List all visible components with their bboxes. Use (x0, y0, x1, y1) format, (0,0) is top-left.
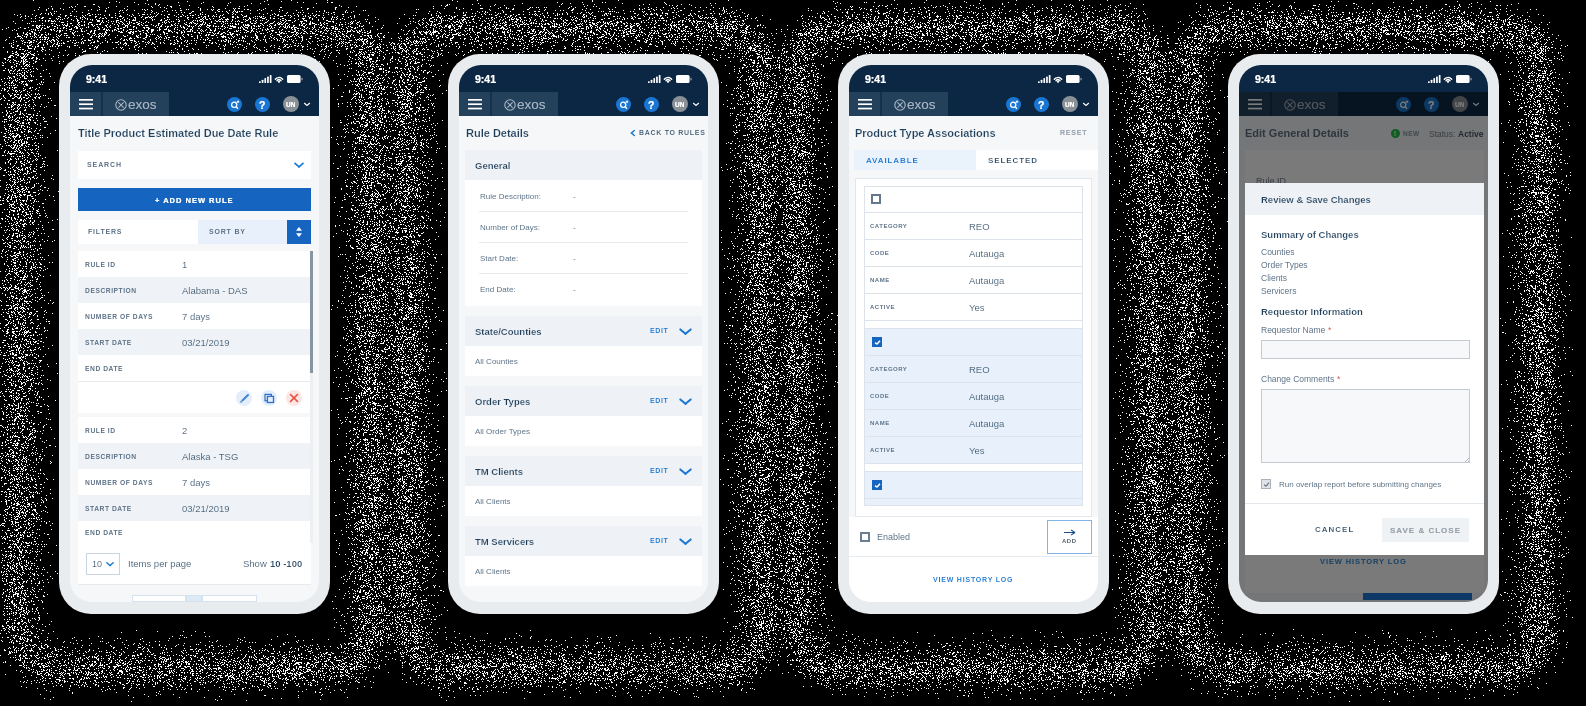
button[interactable]: CATEGORY (864, 356, 1083, 382)
button[interactable]: SORT BY (198, 220, 287, 244)
button[interactable]: Enabled (860, 532, 911, 542)
button[interactable]: SAVE & CLOSE (1382, 518, 1469, 542)
button[interactable]: Select all rows (871, 194, 881, 204)
button[interactable]: NUMBER OF DAYS (78, 303, 311, 329)
button[interactable]: Delete (286, 390, 302, 406)
button[interactable]: Menu (459, 92, 490, 116)
button[interactable]: Account menu (1082, 100, 1090, 108)
button[interactable]: VIEW HISTORY LOG (933, 576, 1014, 584)
button[interactable]: Account (1062, 96, 1078, 112)
staticText: CATEGORY (870, 366, 969, 373)
button[interactable]: Search (616, 97, 631, 112)
staticText: Alaska - TSG (182, 451, 239, 462)
button[interactable]: TM Servicers (465, 526, 702, 556)
staticText: + ADD NEW RULE (155, 196, 234, 204)
staticText: Autauga (969, 248, 1005, 259)
button[interactable]: CANCEL (1307, 517, 1363, 542)
button[interactable]: ADD (1047, 520, 1092, 554)
button[interactable]: Menu (849, 92, 880, 116)
button[interactable]: RESET (1060, 129, 1088, 137)
button[interactable]: CATEGORY (864, 213, 1083, 239)
button[interactable]: CODE (864, 383, 1083, 409)
button[interactable]: + ADD NEW RULE (78, 188, 311, 211)
button[interactable]: Search (227, 97, 242, 112)
button[interactable]: Sort direction (287, 220, 311, 244)
button[interactable]: END DATE (78, 355, 311, 381)
staticText: Enabled (877, 532, 911, 542)
staticText: ? (1038, 99, 1045, 111)
button[interactable]: Menu (70, 92, 101, 116)
staticText: - (573, 192, 576, 201)
button[interactable]: Account (1452, 96, 1468, 112)
button[interactable]: Copy (261, 390, 277, 406)
staticText: DESCRIPTION (85, 287, 182, 294)
staticText: Items per page (128, 558, 192, 569)
button[interactable]: Account (672, 96, 688, 112)
button[interactable]: Selected (872, 480, 882, 490)
staticText: exos (128, 97, 157, 112)
staticText: REO (969, 221, 990, 232)
staticText: CODE (870, 250, 969, 257)
staticText: ACTIVE (870, 304, 969, 311)
staticText: BACK TO RULES (639, 129, 706, 137)
button[interactable]: Account (283, 96, 299, 112)
button[interactable]: State/Counties (465, 316, 702, 346)
button[interactable]: AVAILABLE (854, 150, 976, 170)
staticText: NAME (870, 420, 969, 427)
staticText: 10 -100 (270, 558, 303, 569)
button[interactable]: Help (255, 97, 270, 112)
staticText: RULE ID (85, 261, 182, 268)
button[interactable]: CODE (864, 240, 1083, 266)
button[interactable]: ACTIVE (864, 294, 1083, 320)
button[interactable]: Menu (1239, 92, 1270, 116)
button[interactable]: ACTIVE (864, 437, 1083, 463)
staticText: EDIT (650, 327, 669, 335)
staticText: Active (1458, 129, 1484, 138)
staticText: NAME (870, 277, 969, 284)
button[interactable]: Search (1006, 97, 1021, 112)
staticText: END DATE (85, 365, 182, 372)
button[interactable]: START DATE (78, 495, 311, 521)
staticText: VIEW HISTORY LOG (1320, 557, 1407, 565)
staticText: Review & Save Changes (1261, 194, 1371, 205)
button[interactable]: Run overlap report before submitting cha… (1261, 479, 1442, 489)
button[interactable]: RULE ID (78, 417, 311, 443)
button[interactable]: DESCRIPTION (78, 443, 311, 469)
staticText: - (573, 223, 576, 232)
staticText: Counties (1261, 247, 1295, 256)
button[interactable]: FILTERS (78, 220, 198, 244)
staticText: Rule ID (1256, 176, 1287, 186)
button[interactable]: SELECTED (976, 150, 1098, 170)
staticText: Yes (969, 302, 985, 313)
staticText: NEW (1403, 130, 1420, 137)
staticText: * (1328, 325, 1332, 334)
staticText: Requestor Name (1261, 325, 1328, 334)
button[interactable]: Help (1034, 97, 1049, 112)
button[interactable]: 10 (86, 553, 120, 575)
button[interactable]: Search (1396, 97, 1411, 112)
button[interactable]: DESCRIPTION (78, 277, 311, 303)
button[interactable]: Account menu (692, 100, 700, 108)
button[interactable]: Edit (236, 390, 252, 406)
button[interactable]: NAME (864, 267, 1083, 293)
staticText: 7 days (182, 477, 210, 488)
staticText: Rule Details (466, 127, 529, 139)
button[interactable]: Help (1424, 97, 1439, 112)
button[interactable]: START DATE (78, 329, 311, 355)
staticText: 10 (92, 559, 103, 569)
button[interactable]: SEARCH (78, 151, 311, 179)
button[interactable]: Account menu (303, 100, 311, 108)
button[interactable]: BACK TO RULES (629, 129, 706, 137)
button[interactable]: Account menu (1472, 100, 1480, 108)
button[interactable]: RULE ID (78, 251, 311, 277)
staticText: SELECTED (988, 156, 1038, 165)
staticText: All Clients (475, 497, 511, 506)
button[interactable]: NAME (864, 410, 1083, 436)
staticText: Requestor Information (1261, 306, 1363, 317)
button[interactable]: Selected (872, 337, 882, 347)
button[interactable]: TM Clients (465, 456, 702, 486)
button[interactable]: Help (644, 97, 659, 112)
button[interactable]: END DATE (78, 521, 311, 543)
button[interactable]: NUMBER OF DAYS (78, 469, 311, 495)
button[interactable]: Order Types (465, 386, 702, 416)
